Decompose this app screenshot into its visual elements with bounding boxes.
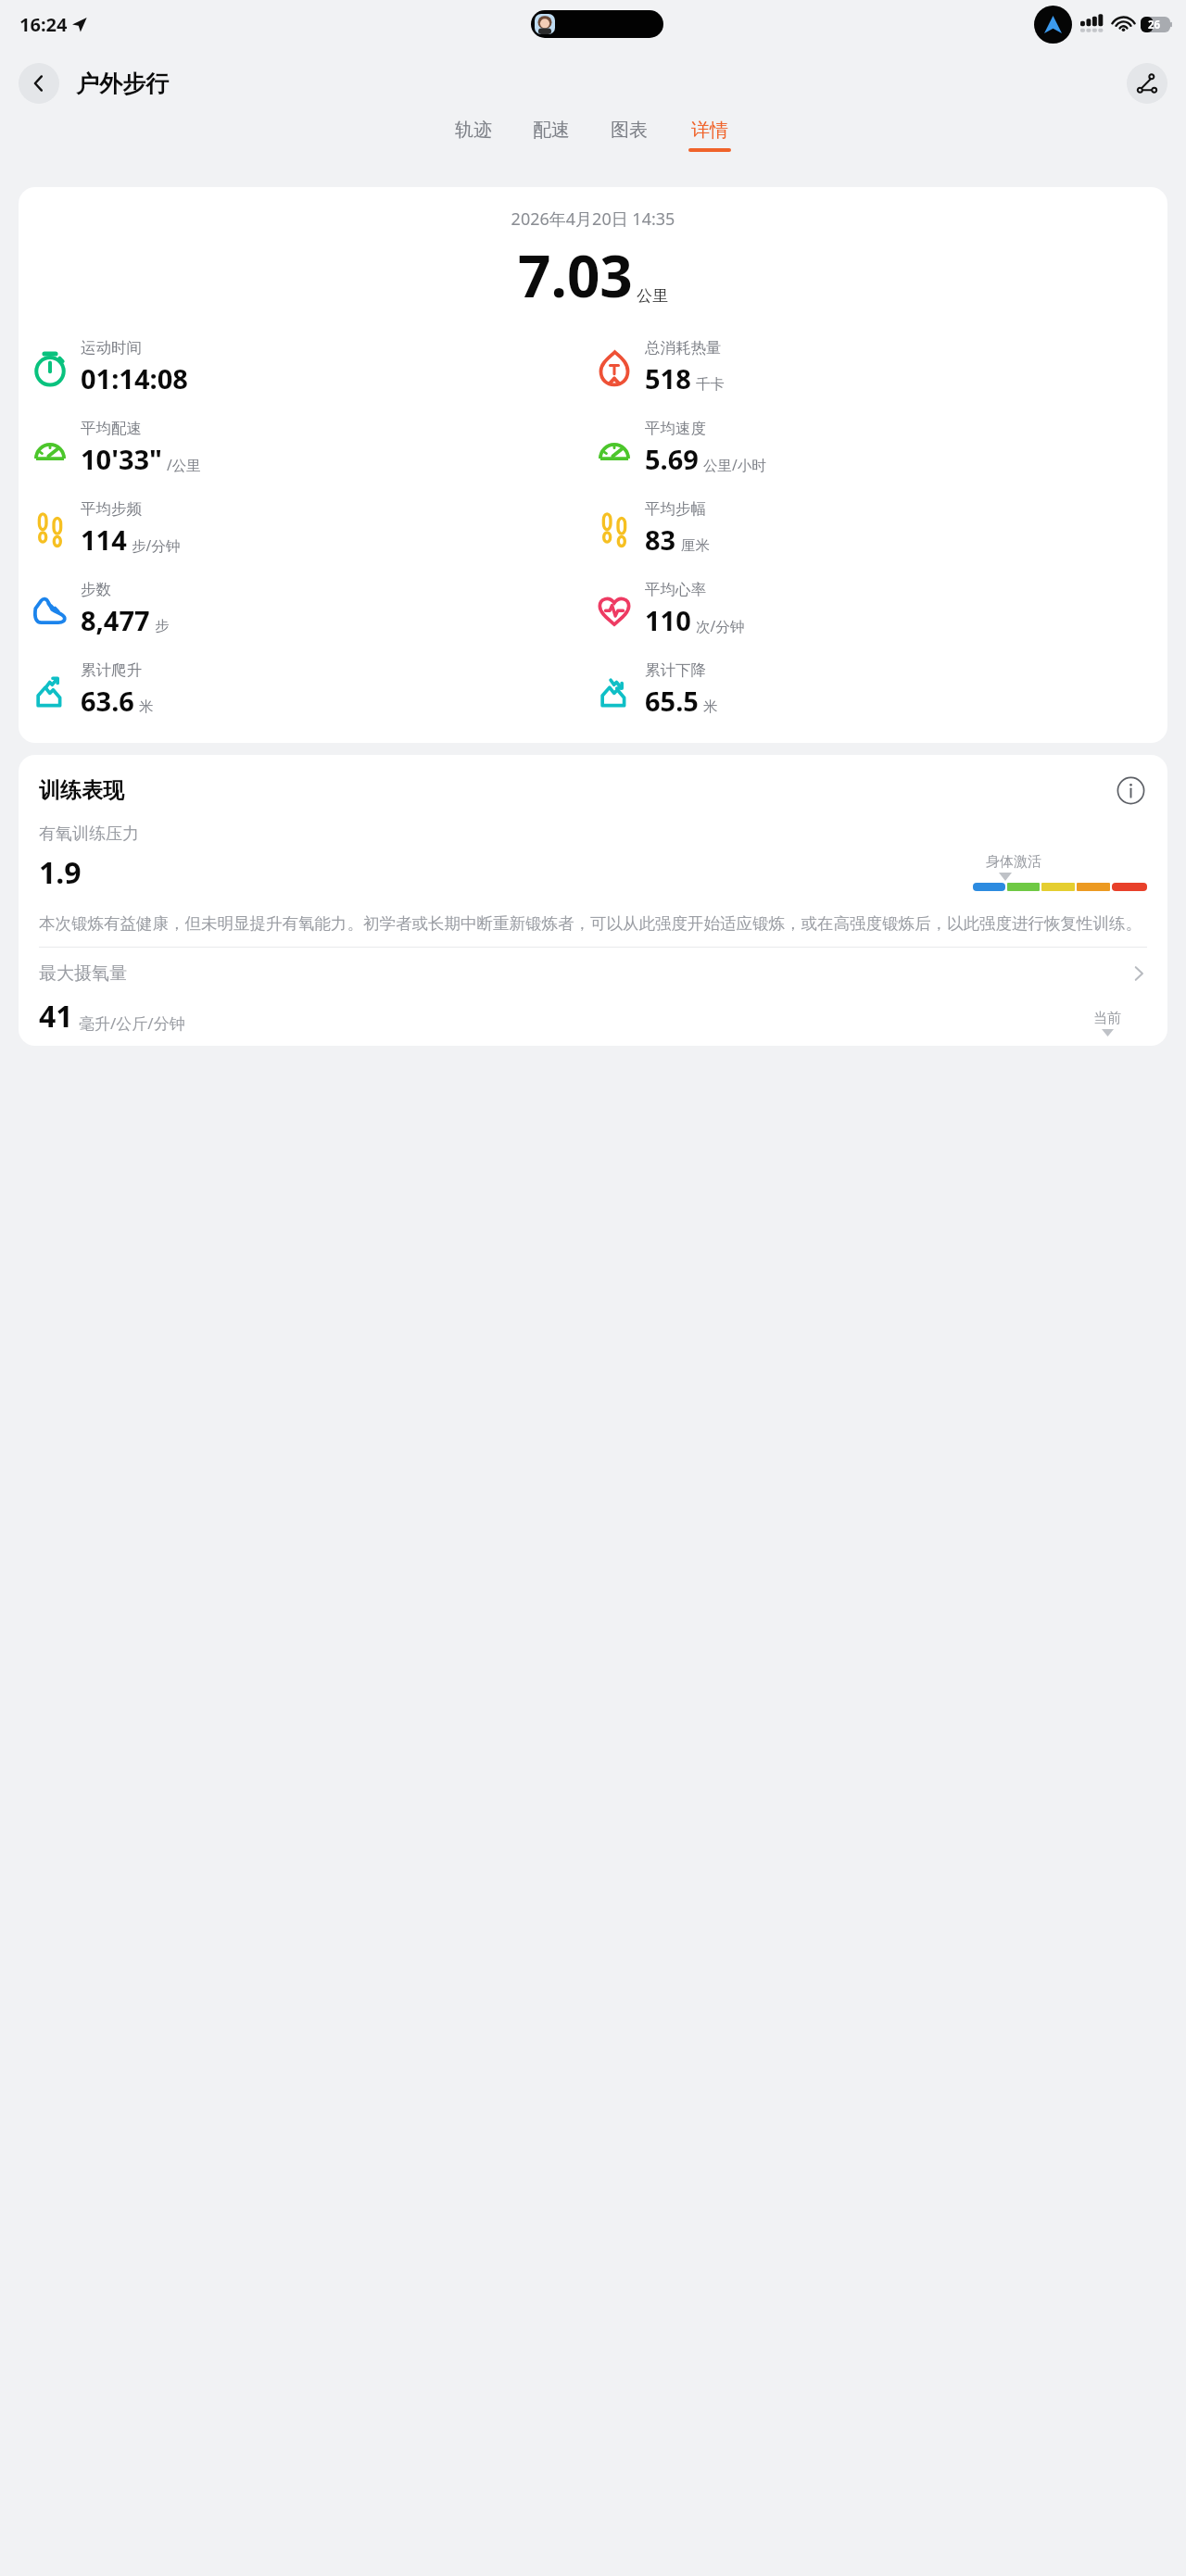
staticText: 详情 — [691, 119, 728, 142]
button[interactable]: 运动时间 — [32, 338, 596, 396]
staticText: 65.5 — [645, 683, 699, 719]
staticText: 步数 — [81, 580, 111, 599]
staticText: 有氧训练压力 — [39, 823, 139, 845]
staticText: 当前 — [1093, 1010, 1121, 1027]
staticText: 110 — [645, 602, 691, 638]
staticText: 1.9 — [39, 852, 82, 893]
staticText: 总消耗热量 — [645, 338, 722, 358]
staticText: 米 — [703, 697, 718, 716]
staticText: 轨迹 — [455, 119, 492, 142]
staticText: 7.03 — [518, 236, 633, 314]
button[interactable]: 平均配速 — [32, 419, 596, 477]
button[interactable]: Share — [1127, 63, 1167, 104]
staticText: 83 — [645, 521, 676, 558]
button[interactable]: 平均步频 — [32, 499, 596, 558]
staticText: 518 — [645, 360, 691, 396]
staticText: 10'33" — [81, 441, 162, 477]
button[interactable]: 最大摄氧量 — [39, 962, 1147, 985]
button[interactable]: 轨迹 — [455, 119, 492, 148]
staticText: 16:24 — [19, 12, 68, 37]
staticText: 毫升/公斤/分钟 — [79, 1012, 185, 1034]
button[interactable]: 累计下降 — [596, 660, 1160, 719]
staticText: 训练表现 — [39, 777, 1114, 804]
other: Navigation — [1034, 6, 1072, 44]
staticText: 身体激活 — [986, 853, 1041, 871]
staticText: 配速 — [533, 119, 570, 142]
staticText: /公里 — [167, 455, 201, 474]
staticText: 63.6 — [81, 683, 134, 719]
staticText: 8,477 — [81, 602, 150, 638]
staticText: 千卡 — [696, 375, 725, 394]
staticText: 平均速度 — [645, 419, 706, 438]
staticText: 户外步行 — [76, 69, 169, 98]
button[interactable]: 图表 — [611, 119, 648, 148]
staticText: 运动时间 — [81, 338, 142, 358]
staticText: 平均心率 — [645, 580, 706, 599]
staticText: 最大摄氧量 — [39, 962, 1130, 985]
staticText: 2026年4月20日 14:35 — [19, 207, 1167, 231]
staticText: 次/分钟 — [696, 616, 745, 635]
staticText: 累计下降 — [645, 660, 706, 680]
staticText: 步/分钟 — [132, 535, 181, 555]
staticText: 厘米 — [681, 536, 710, 555]
staticText: 米 — [139, 697, 154, 716]
staticText: 114 — [81, 521, 127, 558]
staticText: 01:14:08 — [81, 360, 188, 396]
staticText: 本次锻炼有益健康，但未明显提升有氧能力。初学者或长期中断重新锻炼者，可以从此强度… — [39, 913, 1142, 934]
button[interactable]: 步数 — [32, 580, 596, 638]
staticText: 步 — [155, 617, 170, 635]
button[interactable]: 总消耗热量 — [596, 338, 1160, 396]
button[interactable]: 详情 — [688, 119, 731, 152]
button[interactable]: 平均速度 — [596, 419, 1160, 477]
staticText: 公里/小时 — [703, 455, 766, 474]
button[interactable]: 平均心率 — [596, 580, 1160, 638]
staticText: 5.69 — [645, 441, 699, 477]
button[interactable]: Back — [19, 63, 59, 104]
staticText: 平均配速 — [81, 419, 142, 438]
button[interactable]: 累计爬升 — [32, 660, 596, 719]
button[interactable]: 配速 — [533, 119, 570, 148]
staticText: 26 — [1148, 18, 1161, 32]
button[interactable]: Info — [1114, 773, 1147, 807]
staticText: 公里 — [637, 286, 668, 306]
staticText: 平均步幅 — [645, 499, 706, 519]
staticText: 图表 — [611, 119, 648, 142]
staticText: 平均步频 — [81, 499, 142, 519]
button[interactable]: 平均步幅 — [596, 499, 1160, 558]
staticText: 累计爬升 — [81, 660, 142, 680]
staticText: 41 — [39, 996, 73, 1037]
